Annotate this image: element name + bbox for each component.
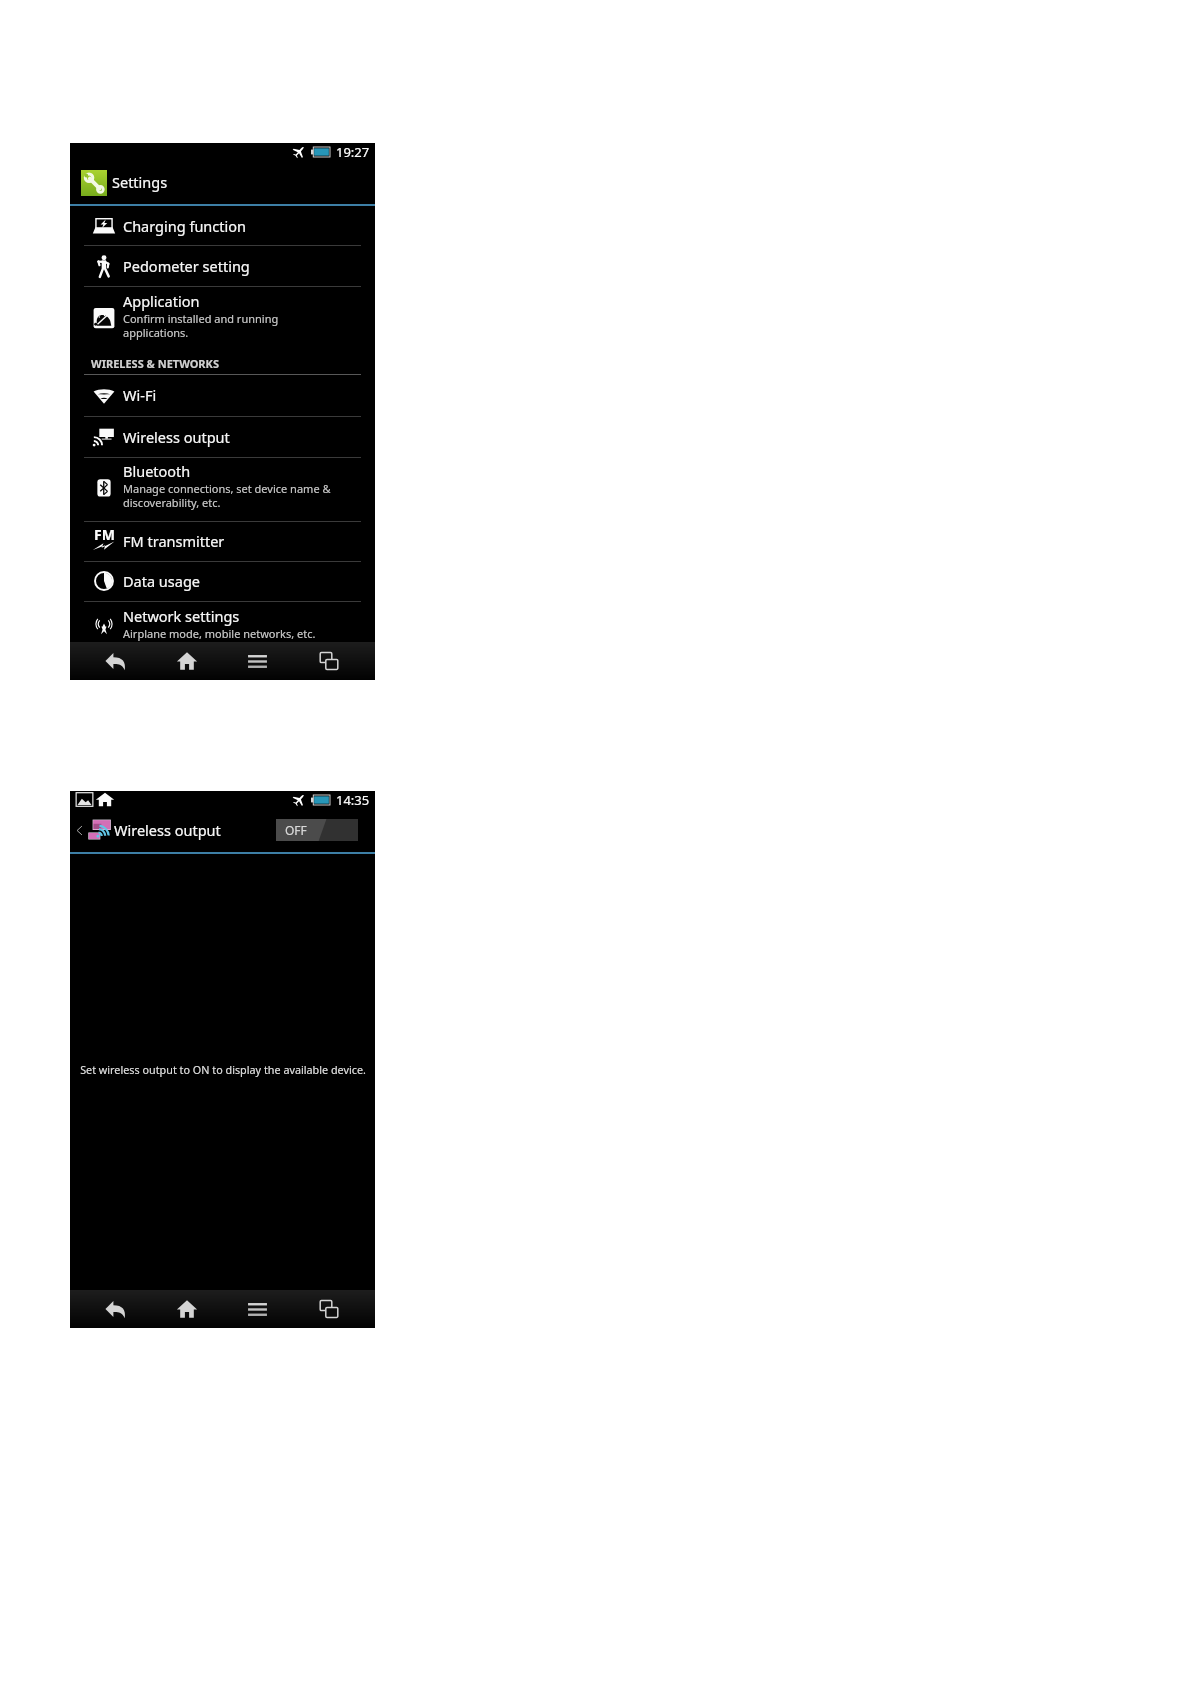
staticText: FM	[94, 525, 115, 544]
staticText: Pedometer setting	[123, 256, 250, 276]
button[interactable]: Menu	[222, 642, 293, 680]
staticText: OFF	[285, 822, 307, 838]
staticText: Confirm installed and running applicatio…	[123, 311, 279, 340]
staticText: Application	[123, 291, 200, 311]
staticText: Manage connections, set device name & di…	[123, 481, 331, 510]
staticText: 14:35	[336, 791, 370, 808]
staticText: Wi-Fi	[123, 385, 157, 405]
button[interactable]: Data usage	[70, 561, 375, 601]
staticText: 19:27	[336, 143, 370, 160]
button[interactable]: Bluetooth	[70, 457, 375, 521]
button[interactable]: Application	[70, 286, 375, 352]
button[interactable]: Home	[151, 1290, 222, 1328]
button[interactable]: Wireless output	[70, 416, 375, 457]
staticText: Network settings	[123, 606, 240, 626]
button[interactable]: Back	[72, 823, 86, 837]
button[interactable]: Charging function	[70, 206, 375, 245]
button[interactable]: Pedometer setting	[70, 245, 375, 286]
button[interactable]: Wireless output toggle	[276, 819, 358, 841]
button[interactable]: Network settings	[70, 601, 375, 642]
staticText: Wireless output	[114, 820, 221, 840]
staticText: Airplane mode, mobile networks, etc.	[123, 626, 316, 641]
staticText: Data usage	[123, 571, 200, 591]
button[interactable]: Network settings	[70, 601, 375, 642]
button[interactable]: Home	[151, 642, 222, 680]
staticText: FM transmitter	[123, 531, 225, 551]
button[interactable]: Back	[80, 1290, 151, 1328]
button[interactable]: Menu	[222, 1290, 293, 1328]
button[interactable]: Back	[80, 642, 151, 680]
button[interactable]: Recent apps	[293, 642, 364, 680]
button[interactable]: Wi-Fi	[70, 374, 375, 416]
button[interactable]: Recent apps	[293, 1290, 364, 1328]
button[interactable]: FM	[70, 521, 375, 561]
staticText: Wireless output	[123, 427, 230, 447]
staticText: Bluetooth	[123, 461, 191, 481]
staticText: Set wireless output to ON to display the…	[80, 1062, 366, 1077]
staticText: Settings	[112, 172, 168, 192]
button[interactable]: Settings	[70, 160, 375, 204]
staticText: WIRELESS & NETWORKS	[91, 356, 219, 371]
staticText: Charging function	[123, 216, 246, 236]
